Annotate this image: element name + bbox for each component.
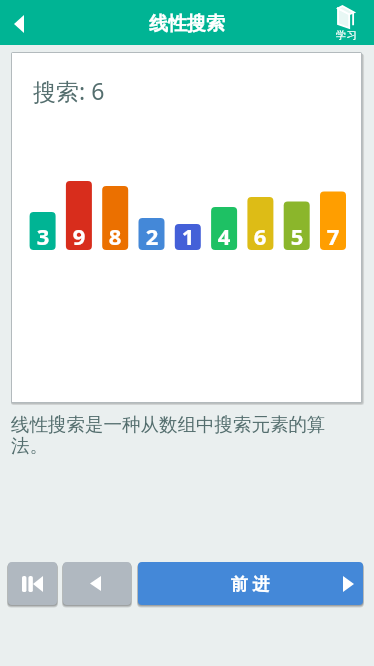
button[interactable]: 前 进 [138, 562, 363, 605]
staticText: 3 [33, 221, 53, 251]
staticText: 7 [323, 221, 343, 251]
staticText: 线性搜索是一种从数组中搜索元素的算法。 [11, 413, 341, 458]
staticText: 9 [69, 221, 89, 251]
button[interactable]: Study [318, 0, 374, 45]
staticText: 线性搜索 [149, 12, 225, 36]
button[interactable]: Restart [8, 562, 57, 605]
staticText: 搜索: 6 [33, 75, 105, 106]
staticText: 8 [105, 221, 125, 251]
staticText: 前 进 [231, 572, 270, 595]
staticText: 学习 [336, 29, 357, 42]
staticText: 4 [214, 221, 234, 251]
staticText: 2 [142, 221, 162, 251]
staticText: 5 [287, 221, 307, 251]
staticText: 6 [250, 221, 270, 251]
staticText: 1 [178, 221, 198, 251]
button[interactable]: Previous [63, 562, 131, 605]
button[interactable]: Back [0, 0, 40, 45]
